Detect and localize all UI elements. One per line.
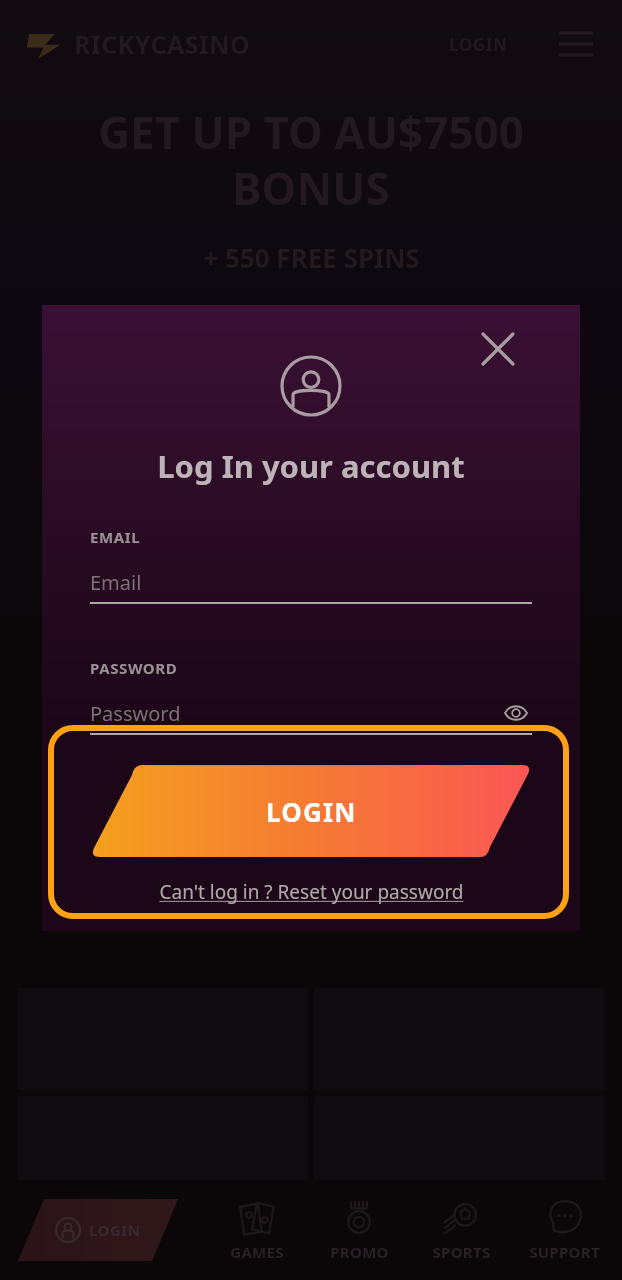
button[interactable]: Show password xyxy=(500,697,532,729)
button[interactable]: GAMES xyxy=(206,1194,308,1266)
staticText: + 550 FREE SPINS xyxy=(203,240,420,275)
staticText: GAMES xyxy=(230,1242,284,1262)
staticText: LOGIN xyxy=(449,33,508,56)
button[interactable]: SUPPORT xyxy=(513,1194,616,1266)
button[interactable]: LOGIN xyxy=(18,1199,178,1261)
button[interactable]: Menu xyxy=(552,20,600,68)
staticText: EMAIL xyxy=(90,527,141,547)
staticText: GET UP TO AU$7500 BONUS xyxy=(36,102,586,218)
button[interactable]: SPORTS xyxy=(410,1194,513,1266)
staticText: RICKYCASINO xyxy=(74,27,251,61)
button[interactable]: Password xyxy=(90,696,532,730)
staticText: LOGIN xyxy=(266,794,357,829)
other: Ricky Casino logo xyxy=(26,26,66,62)
staticText: PROMO xyxy=(330,1242,389,1262)
staticText: SPORTS xyxy=(432,1242,491,1262)
button[interactable]: PROMO xyxy=(308,1194,410,1266)
staticText: Password xyxy=(90,700,181,727)
staticText: SUPPORT xyxy=(529,1242,600,1262)
staticText: Email xyxy=(90,569,142,596)
staticText: Can't log in ? Reset your password xyxy=(159,879,464,905)
staticText: PASSWORD xyxy=(90,658,178,678)
staticText: Log In your account xyxy=(157,445,465,487)
button[interactable]: Close xyxy=(476,327,520,371)
staticText: LOGIN xyxy=(89,1220,141,1240)
button[interactable]: Email xyxy=(90,565,532,599)
button[interactable]: LOGIN xyxy=(439,25,518,64)
button[interactable]: Can't log in ? Reset your password xyxy=(90,879,532,905)
button[interactable]: LOGIN xyxy=(90,765,532,857)
